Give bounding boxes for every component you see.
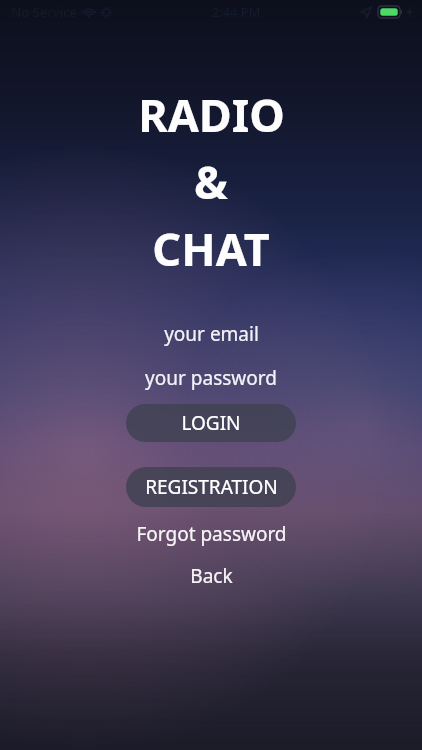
staticText: No Service: [11, 3, 77, 21]
other: Activity: [101, 7, 112, 18]
staticText: LOGIN: [181, 410, 241, 436]
other: Charging: [406, 6, 413, 18]
button[interactable]: LOGIN: [126, 404, 296, 442]
staticText: 2:44 PM: [211, 3, 261, 21]
button[interactable]: Back: [0, 560, 422, 592]
button[interactable]: Forgot password: [0, 518, 422, 550]
staticText: &: [194, 151, 228, 212]
staticText: your password: [145, 365, 277, 391]
staticText: Forgot password: [136, 521, 287, 547]
other: Battery charging: [378, 6, 403, 18]
staticText: Back: [190, 563, 233, 589]
staticText: RADIO: [138, 84, 285, 145]
staticText: your email: [164, 321, 259, 347]
staticText: CHAT: [152, 218, 270, 279]
other: Location: [360, 6, 372, 18]
staticText: REGISTRATION: [145, 474, 278, 500]
button[interactable]: your email: [0, 317, 422, 351]
button[interactable]: your password: [0, 361, 422, 395]
other: Wi-Fi: [82, 7, 96, 18]
button[interactable]: REGISTRATION: [126, 467, 296, 507]
